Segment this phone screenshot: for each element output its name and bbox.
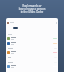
button[interactable] (6, 51, 58, 54)
staticText: Real rewards or lose a house a person in… (0, 4, 64, 13)
button[interactable] (6, 47, 58, 49)
button[interactable]: Join the hunt (13, 27, 18, 29)
button[interactable]: More options (6, 18, 58, 27)
button[interactable] (6, 42, 58, 45)
button[interactable] (6, 61, 58, 63)
button[interactable] (6, 65, 58, 68)
button[interactable] (6, 37, 58, 40)
button[interactable] (6, 56, 58, 58)
